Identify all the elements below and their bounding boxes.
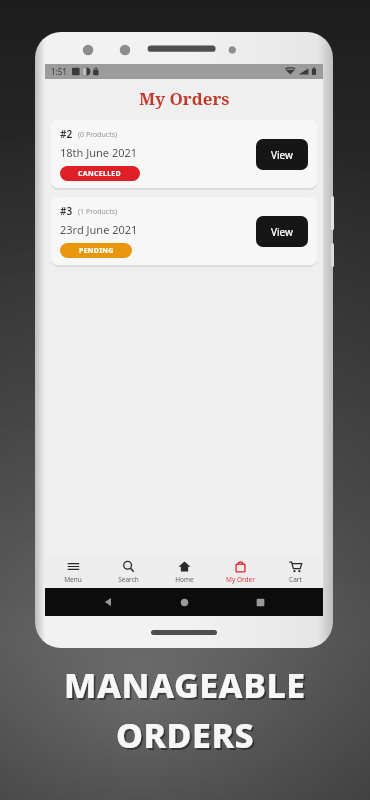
button[interactable]: View xyxy=(256,216,308,247)
staticText: Home xyxy=(175,575,194,584)
button[interactable]: Home xyxy=(159,556,209,588)
staticText: MANAGEABLE xyxy=(66,664,308,710)
button[interactable]: Search xyxy=(103,556,153,588)
staticText: #3 xyxy=(60,204,73,218)
staticText: (0 Products) xyxy=(78,130,118,140)
staticText: 23rd June 2021 xyxy=(60,222,138,237)
staticText: PENDING xyxy=(79,246,114,256)
staticText: 18th June 2021 xyxy=(60,145,138,160)
staticText: View xyxy=(271,225,293,239)
staticText: CANCELLED xyxy=(78,169,122,179)
staticText: Menu xyxy=(64,575,82,584)
button[interactable]: Home xyxy=(171,589,197,615)
staticText: View xyxy=(271,148,293,162)
button[interactable]: Recent apps xyxy=(247,589,273,615)
staticText: Cart xyxy=(289,575,302,584)
staticText: My Orders xyxy=(139,87,230,110)
staticText: Search xyxy=(118,575,139,584)
button[interactable]: Back xyxy=(95,589,121,615)
button[interactable]: #2 xyxy=(51,120,317,188)
staticText: ORDERS xyxy=(118,714,257,760)
button[interactable]: My Order xyxy=(215,556,265,588)
button[interactable]: View xyxy=(256,139,308,170)
staticText: #2 xyxy=(60,127,73,141)
staticText: ORDERS xyxy=(116,712,255,758)
staticText: MANAGEABLE xyxy=(64,662,306,708)
staticText: 1:51 xyxy=(51,66,67,77)
staticText: My Order xyxy=(226,575,255,584)
button[interactable]: Cart xyxy=(270,556,320,588)
staticText: (1 Products) xyxy=(78,207,118,217)
button[interactable]: Menu xyxy=(48,556,98,588)
button[interactable]: #3 xyxy=(51,197,317,265)
